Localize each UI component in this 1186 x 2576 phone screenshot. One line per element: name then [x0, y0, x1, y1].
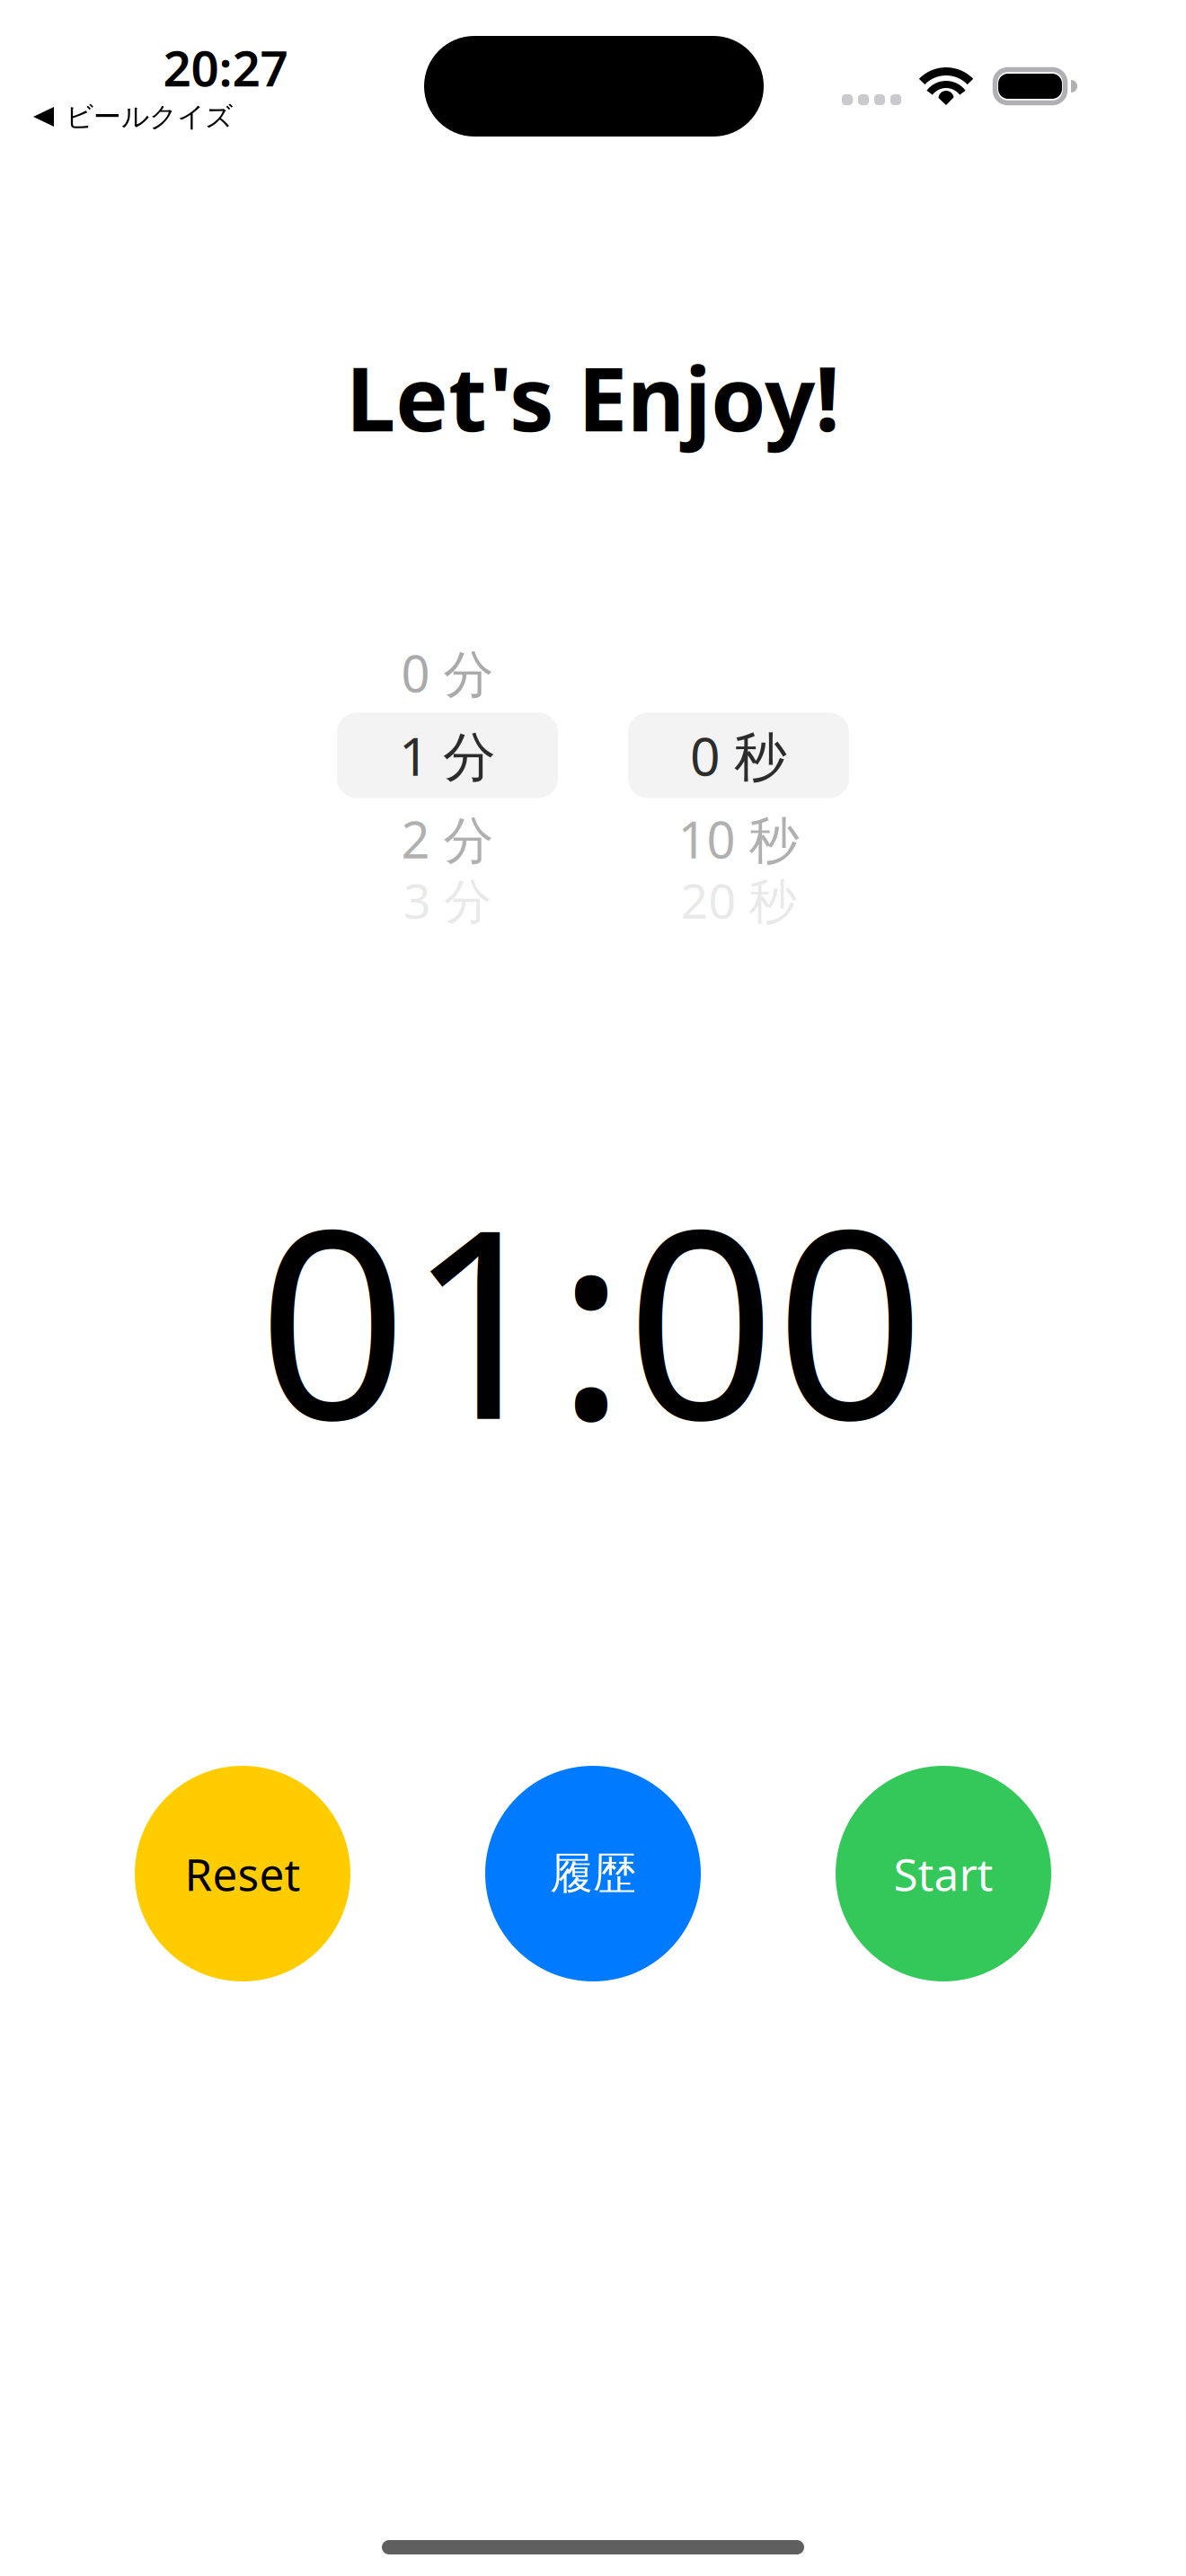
staticText: 01:00 [258, 1144, 925, 1491]
staticText: 履歴 [550, 1847, 636, 1900]
button[interactable]: 3 分 [337, 859, 558, 941]
staticText: ビールクイズ [66, 100, 233, 134]
button[interactable]: 20 秒 [628, 859, 849, 941]
staticText: Start [894, 1844, 993, 1903]
staticText: 1 分 [399, 720, 496, 790]
button[interactable]: Reset [135, 1766, 350, 1981]
staticText: Let's Enjoy! [346, 338, 840, 456]
staticText: Reset [185, 1844, 301, 1903]
staticText: 20 秒 [681, 868, 797, 932]
staticText: 2 分 [401, 805, 494, 872]
staticText: 0 秒 [690, 720, 787, 790]
button[interactable]: 履歴 [485, 1766, 701, 1981]
button[interactable]: 2 分 [337, 798, 558, 880]
button[interactable]: ビールクイズ [33, 96, 233, 137]
button[interactable]: 0 秒 [628, 714, 849, 797]
staticText: 3 分 [403, 868, 491, 932]
button[interactable]: 0 分 [337, 631, 558, 714]
button[interactable]: 10 秒 [628, 798, 849, 880]
button[interactable]: 1 分 [337, 714, 558, 797]
staticText: 20:27 [163, 35, 288, 100]
staticText: 10 秒 [678, 805, 799, 872]
button[interactable]: Start [836, 1766, 1051, 1981]
staticText: 0 分 [401, 639, 494, 706]
